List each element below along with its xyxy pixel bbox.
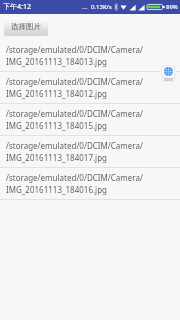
button[interactable]: /storage/emulated/0/DCIM/Camera/ bbox=[0, 72, 180, 104]
button[interactable]: Assistive touch bbox=[161, 65, 176, 82]
staticText: 下午4:12 bbox=[3, 2, 31, 12]
staticText: /storage/emulated/0/DCIM/Camera/ bbox=[6, 44, 143, 55]
staticText: IMG_20161113_184012.jpg bbox=[6, 88, 108, 99]
staticText: /storage/emulated/0/DCIM/Camera/ bbox=[6, 140, 143, 151]
staticText: IMG_20161113_184013.jpg bbox=[6, 56, 108, 67]
button[interactable]: 选择图片 bbox=[4, 17, 48, 36]
staticText: /storage/emulated/0/DCIM/Camera/ bbox=[6, 76, 143, 87]
staticText: IMG_20161113_184015.jpg bbox=[6, 120, 108, 131]
staticText: 选择图片 bbox=[11, 22, 41, 31]
staticText: IMG_20161113_184016.jpg bbox=[6, 184, 108, 195]
button[interactable]: /storage/emulated/0/DCIM/Camera/ bbox=[0, 104, 180, 136]
staticText: ... bbox=[82, 2, 88, 12]
staticText: /storage/emulated/0/DCIM/Camera/ bbox=[6, 172, 143, 183]
button[interactable]: /storage/emulated/0/DCIM/Camera/ bbox=[0, 136, 180, 168]
staticText: IMG_20161113_184017.jpg bbox=[6, 152, 108, 163]
staticText: 0.13K/s bbox=[91, 3, 112, 11]
staticText: 89% bbox=[166, 3, 178, 11]
staticText: /storage/emulated/0/DCIM/Camera/ bbox=[6, 108, 143, 119]
button[interactable]: /storage/emulated/0/DCIM/Camera/ bbox=[0, 40, 180, 72]
button[interactable]: /storage/emulated/0/DCIM/Camera/ bbox=[0, 168, 180, 200]
